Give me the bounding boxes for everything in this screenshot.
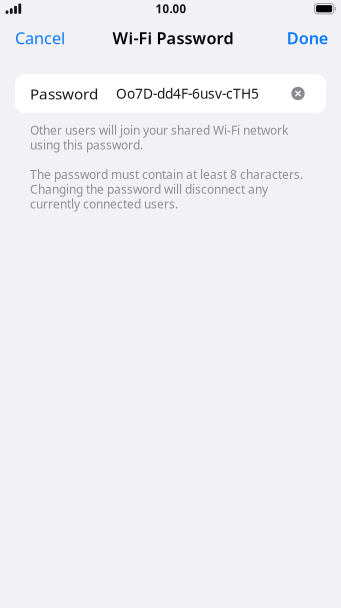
staticText: Done [287,27,329,49]
staticText: Other users will join your shared Wi-Fi … [30,122,288,138]
staticText: using this password. [30,137,143,153]
button[interactable]: Cancel [15,27,65,49]
staticText: Wi-Fi Password [112,27,233,49]
staticText: The password must contain at least 8 cha… [30,166,303,182]
staticText: Oo7D-dd4F-6usv-cTH5 [116,84,259,103]
staticText: Cancel [15,27,65,49]
staticText: Password [30,83,98,104]
staticText: 10.00 [155,1,186,16]
staticText: currently connected users. [30,196,178,212]
button[interactable]: Done [287,27,329,49]
staticText: Changing the password will disconnect an… [30,181,268,197]
button[interactable]: Clear password [287,78,309,108]
